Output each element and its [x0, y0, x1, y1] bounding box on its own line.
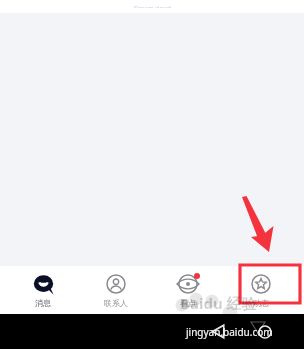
button[interactable]: 看点: [158, 266, 218, 314]
button[interactable]: Home: [113, 314, 304, 349]
staticText: 动态: [253, 298, 269, 308]
button[interactable]: Back: [66, 314, 304, 349]
button[interactable]: 消息: [13, 266, 73, 314]
button[interactable]: 动态: [231, 266, 291, 314]
staticText: 消息: [35, 298, 51, 308]
button[interactable]: 联系人: [86, 266, 146, 314]
staticText: Baidu 经验: [180, 293, 257, 313]
staticText: 看点: [180, 298, 196, 308]
button[interactable]: Recents: [164, 314, 304, 349]
staticText: [150, 6, 154, 16]
staticText: 联系人: [104, 298, 128, 308]
staticText: jingyan.baidu.com: [186, 325, 273, 339]
staticText: Dream cloud: [134, 4, 171, 8]
